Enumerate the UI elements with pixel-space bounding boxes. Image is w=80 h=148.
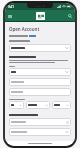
button[interactable]: Title xyxy=(9,68,71,76)
button[interactable]: Year xyxy=(52,101,71,109)
button[interactable]: Mobile number xyxy=(9,128,71,136)
button[interactable]: Day xyxy=(9,101,24,109)
staticText: 9:41 xyxy=(8,5,14,9)
button[interactable]: First name xyxy=(9,78,71,86)
button[interactable]: Month xyxy=(26,101,50,109)
button[interactable]: Bank logo, home xyxy=(36,12,45,20)
button[interactable]: Country of residence, Nigeria xyxy=(9,44,71,52)
staticText: Open Account xyxy=(9,26,40,32)
button[interactable]: Search xyxy=(67,13,73,19)
button[interactable]: Menu xyxy=(7,13,13,19)
button[interactable]: Email address xyxy=(9,118,71,126)
button[interactable]: Surname xyxy=(9,88,71,96)
